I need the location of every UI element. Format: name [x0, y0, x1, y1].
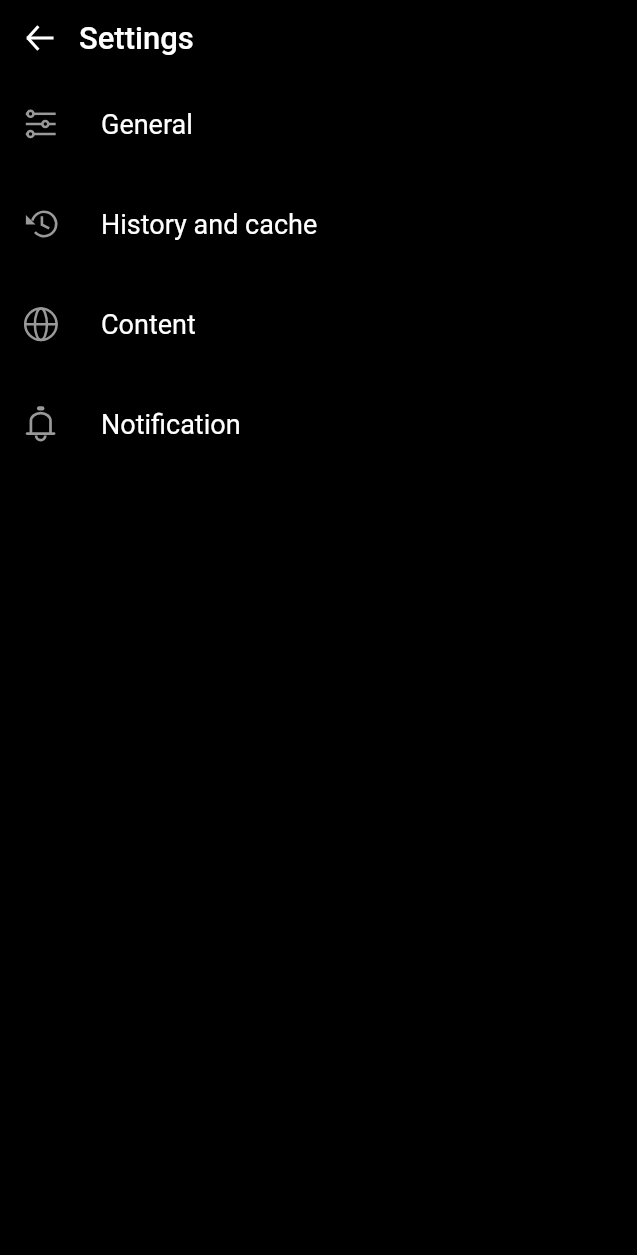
button[interactable]: General: [0, 74, 637, 174]
staticText: Settings: [79, 20, 194, 56]
staticText: General: [101, 109, 193, 141]
button[interactable]: History and cache: [0, 174, 637, 274]
button[interactable]: Content: [0, 274, 637, 374]
staticText: Notification: [101, 409, 241, 441]
staticText: History and cache: [101, 209, 318, 241]
button[interactable]: Back: [13, 10, 69, 66]
staticText: Content: [101, 309, 196, 341]
button[interactable]: Notification: [0, 374, 637, 474]
